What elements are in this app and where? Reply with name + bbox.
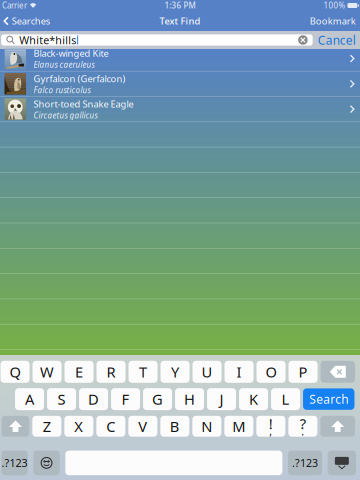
staticText: M [232,416,245,436]
button[interactable]: Q [0,361,29,383]
staticText: G [152,389,163,409]
button[interactable]: Numbers and symbols [288,451,322,475]
button[interactable]: V [128,416,157,437]
staticText: ? [300,414,306,433]
button[interactable]: C [96,416,125,437]
button[interactable]: ! [256,416,285,437]
staticText: Elanus caeruleus [34,59,95,70]
button[interactable]: Shift [2,416,29,437]
staticText: Cancel [318,32,356,48]
button[interactable]: L [271,388,300,410]
staticText: S [57,389,65,409]
staticText: A [25,389,34,409]
staticText: Q [9,362,20,382]
button[interactable]: W [32,361,61,383]
staticText: L [282,389,290,409]
button[interactable]: B [160,416,189,437]
staticText: .?123 [1,456,27,470]
staticText: , [269,424,272,439]
staticText: Black-winged Kite [34,47,109,59]
staticText: Z [43,416,51,436]
staticText: P [299,362,308,382]
staticText: V [138,416,147,436]
staticText: F [121,389,129,409]
button[interactable]: E [64,361,93,383]
staticText: T [139,362,147,382]
button[interactable]: Delete [321,361,355,383]
button[interactable]: H [175,388,204,410]
button[interactable]: X [64,416,93,437]
button[interactable]: Emoji [33,451,60,475]
staticText: B [170,416,180,436]
button[interactable]: M [224,416,253,437]
staticText: Carrier [2,0,27,11]
button[interactable]: Z [32,416,61,437]
staticText: H [184,389,195,409]
staticText: Bookmark [310,15,356,27]
staticText: Short-toed Snake Eagle [34,98,134,110]
button[interactable]: T [128,361,157,383]
button[interactable]: Search [303,388,354,410]
button[interactable]: N [192,416,221,437]
staticText: U [201,362,212,382]
staticText: Text Find [159,15,200,27]
button[interactable]: Y [160,361,189,383]
button[interactable]: Bookmark [304,12,360,30]
button[interactable]: U [192,361,221,383]
button[interactable]: I [224,361,253,383]
button[interactable]: Black-winged Kite [0,46,360,71]
staticText: C [106,416,115,436]
staticText: . [301,424,304,439]
button[interactable]: R [96,361,125,383]
staticText: E [75,362,83,382]
button[interactable]: D [79,388,108,410]
staticText: I [236,362,241,382]
button[interactable]: A [15,388,44,410]
staticText: Falco rusticolus [34,85,91,95]
button[interactable]: J [207,388,236,410]
button[interactable]: Gyrfalcon (Gerfalcon) [0,71,360,96]
button[interactable]: Hide keyboard [328,451,356,475]
staticText: W [40,362,54,382]
button[interactable]: F [111,388,140,410]
staticText: X [74,416,83,436]
button[interactable]: Shift [320,416,355,437]
button[interactable]: G [143,388,172,410]
staticText: R [106,362,115,382]
staticText: White*hills [19,33,76,47]
staticText: .?123 [292,456,318,470]
staticText: ! [269,414,273,433]
button[interactable]: P [289,361,318,383]
button[interactable]: ? [288,416,317,437]
button[interactable]: Cancel [313,30,360,49]
staticText: O [266,362,277,382]
button[interactable]: K [239,388,268,410]
staticText: Circaetus gallicus [34,110,98,121]
staticText: 100% [323,0,345,11]
button[interactable]: Numbers and symbols [1,451,28,475]
button[interactable]: Searches [0,12,55,30]
staticText: D [88,389,99,409]
staticText: Gyrfalcon (Gerfalcon) [34,72,126,85]
button[interactable]: S [47,388,76,410]
staticText: Search [309,391,348,407]
staticText: Searches [12,15,50,27]
staticText: 1:36 PM [164,0,195,11]
button[interactable]: O [257,361,286,383]
staticText: Y [171,362,179,382]
button[interactable]: Short-toed Snake Eagle [0,97,360,121]
staticText: N [201,416,212,436]
staticText: K [249,389,258,409]
staticText: J [219,389,223,409]
